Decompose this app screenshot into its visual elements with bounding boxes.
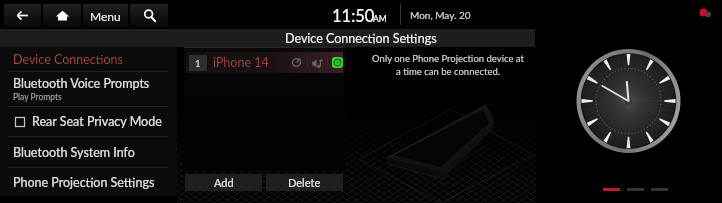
staticText: Phone Projection Settings xyxy=(13,175,155,190)
button[interactable]: Bluetooth System Info xyxy=(0,137,177,167)
button[interactable]: Back xyxy=(4,4,41,27)
staticText: Device Connection Settings xyxy=(285,31,437,46)
staticText: AM xyxy=(373,14,387,24)
button[interactable]: Add xyxy=(185,174,262,191)
button[interactable]: Rear Seat Privacy Mode xyxy=(0,107,177,136)
button[interactable]: Bluetooth Voice Prompts xyxy=(0,72,177,106)
button[interactable]: Device Connections xyxy=(0,47,177,71)
button[interactable]: Sound off xyxy=(697,5,715,23)
button[interactable]: Delete xyxy=(266,174,343,191)
staticText: iPhone 14 xyxy=(213,55,269,70)
staticText: Add xyxy=(214,176,234,189)
staticText: 1 xyxy=(195,58,201,69)
button[interactable]: Menu xyxy=(83,4,128,27)
button[interactable]: Search xyxy=(130,4,168,27)
staticText: 11:50 xyxy=(332,6,375,26)
button[interactable]: 1 xyxy=(186,52,343,73)
button[interactable]: Phone Projection Settings xyxy=(0,168,177,196)
staticText: Play Prompts xyxy=(13,92,62,102)
staticText: Device Connections xyxy=(13,52,123,67)
staticText: Rear Seat Privacy Mode xyxy=(32,114,162,129)
staticText: Bluetooth Voice Prompts xyxy=(13,76,150,91)
staticText: Delete xyxy=(288,176,321,189)
staticText: Menu xyxy=(90,9,121,23)
button[interactable]: Home xyxy=(43,4,81,27)
staticText: Bluetooth System Info xyxy=(13,145,135,160)
staticText: Mon, May. 20 xyxy=(410,9,471,21)
staticText: Only one Phone Projection device at a ti… xyxy=(360,53,536,77)
